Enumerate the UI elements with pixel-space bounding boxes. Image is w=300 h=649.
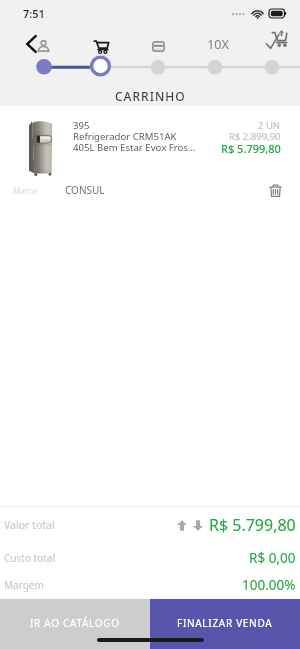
staticText: R$ 2.899,90 bbox=[229, 130, 281, 143]
staticText: 10X bbox=[207, 36, 229, 53]
staticText: CONSUL bbox=[65, 183, 105, 197]
staticText: R$ 5.799,80 bbox=[221, 141, 281, 156]
staticText: CARRINHO bbox=[115, 88, 186, 104]
staticText: Valor total bbox=[4, 518, 55, 532]
staticText: R$ 0,00 bbox=[249, 549, 296, 567]
button[interactable]: Delete item bbox=[265, 180, 285, 200]
button[interactable]: IR AO CATÁLOGO bbox=[0, 599, 150, 649]
staticText: FINALIZAR VENDA bbox=[177, 616, 273, 630]
button[interactable]: Back to customer bbox=[24, 33, 50, 55]
button[interactable]: FINALIZAR VENDA bbox=[150, 599, 300, 649]
staticText: Refrigerador CRM51AK bbox=[73, 130, 177, 143]
button[interactable]: Finish sale bbox=[263, 28, 289, 52]
staticText: 395 bbox=[73, 119, 90, 132]
staticText: 2 UN bbox=[258, 119, 281, 132]
staticText: 100.00% bbox=[242, 576, 296, 594]
button[interactable]: 10X bbox=[203, 34, 233, 54]
staticText: 405L Bem Estar Evox Fros… bbox=[73, 141, 196, 154]
staticText: IR AO CATÁLOGO bbox=[30, 616, 120, 630]
staticText: Marca: bbox=[13, 185, 39, 196]
staticText: 7:51 bbox=[23, 6, 45, 21]
staticText: Custo total bbox=[4, 551, 56, 565]
staticText: Margem bbox=[4, 578, 44, 592]
button[interactable]: Payment bbox=[148, 37, 168, 53]
button[interactable]: Cart bbox=[90, 36, 112, 54]
staticText: R$ 5.799,80 bbox=[209, 514, 296, 536]
